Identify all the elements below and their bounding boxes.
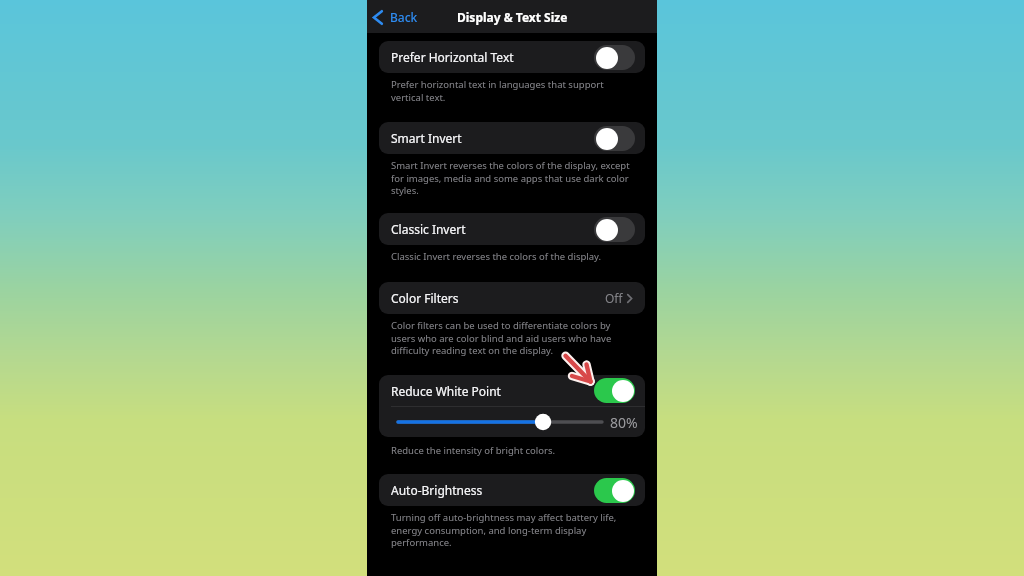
button[interactable]: Classic Invert, off: [594, 217, 635, 242]
staticText: Prefer horizontal text in languages that…: [391, 78, 635, 103]
button[interactable]: Prefer Horizontal Text: [379, 41, 645, 73]
staticText: Off: [605, 290, 623, 306]
staticText: Reduce the intensity of bright colors.: [391, 444, 635, 457]
staticText: Smart Invert: [391, 130, 462, 146]
button[interactable]: Smart Invert: [379, 122, 645, 154]
staticText: Color filters can be used to differentia…: [391, 319, 635, 356]
staticText: Classic Invert: [391, 221, 466, 237]
button[interactable]: Back: [372, 9, 418, 25]
staticText: Color Filters: [391, 290, 459, 306]
staticText: Smart Invert reverses the colors of the …: [391, 159, 635, 196]
button[interactable]: Reduce White Point: [379, 375, 645, 406]
button[interactable]: Classic Invert: [379, 213, 645, 245]
staticText: Display & Text Size: [457, 9, 568, 25]
button[interactable]: Reduce White Point, on: [594, 378, 635, 403]
other: Annotation arrow: [561, 351, 597, 389]
button[interactable]: Smart Invert, off: [594, 126, 635, 151]
staticText: Prefer Horizontal Text: [391, 49, 514, 65]
button[interactable]: Auto-Brightness: [379, 474, 645, 506]
staticText: Classic Invert reverses the colors of th…: [391, 250, 635, 263]
button[interactable]: Prefer Horizontal Text, off: [594, 45, 635, 70]
staticText: Reduce White Point: [391, 383, 501, 399]
button[interactable]: Color Filters: [379, 282, 645, 314]
staticText: Turning off auto-brightness may affect b…: [391, 511, 635, 548]
staticText: Back: [390, 9, 418, 25]
button[interactable]: White point intensity, 80 percent: [398, 413, 602, 431]
staticText: 80%: [610, 413, 638, 432]
button[interactable]: Auto-Brightness, on: [594, 478, 635, 503]
staticText: Auto-Brightness: [391, 482, 483, 498]
